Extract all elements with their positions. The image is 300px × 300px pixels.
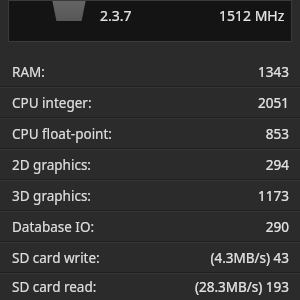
staticText: 2.3.7 bbox=[100, 6, 132, 25]
staticText: RAM: bbox=[12, 63, 258, 81]
staticText: 1512 MHz bbox=[219, 6, 285, 25]
staticText: Database IO: bbox=[12, 218, 265, 236]
staticText: 3D graphics: bbox=[12, 187, 258, 205]
staticText: 2D graphics: bbox=[12, 156, 265, 174]
staticText: 2051 bbox=[258, 94, 289, 112]
staticText: 1173 bbox=[258, 187, 289, 205]
staticText: (28.3MB/s) 193 bbox=[194, 278, 289, 296]
button[interactable]: App icon bbox=[8, 0, 292, 42]
staticText: 290 bbox=[265, 218, 289, 236]
button[interactable]: Database IO: bbox=[0, 212, 300, 241]
staticText: 853 bbox=[265, 125, 289, 143]
button[interactable]: SD card read: bbox=[0, 274, 300, 300]
staticText: 1343 bbox=[258, 63, 289, 81]
staticText: (4.3MB/s) 43 bbox=[210, 249, 289, 267]
staticText: SD card read: bbox=[12, 278, 194, 296]
other: App icon bbox=[48, 0, 90, 22]
button[interactable]: RAM: bbox=[0, 57, 300, 86]
button[interactable]: 2D graphics: bbox=[0, 150, 300, 179]
button[interactable]: SD card write: bbox=[0, 243, 300, 272]
staticText: 294 bbox=[265, 156, 289, 174]
button[interactable]: 3D graphics: bbox=[0, 181, 300, 210]
staticText: CPU integer: bbox=[12, 94, 258, 112]
button[interactable]: CPU float-point: bbox=[0, 119, 300, 148]
button[interactable]: CPU integer: bbox=[0, 88, 300, 117]
staticText: SD card write: bbox=[12, 249, 210, 267]
staticText: CPU float-point: bbox=[12, 125, 265, 143]
